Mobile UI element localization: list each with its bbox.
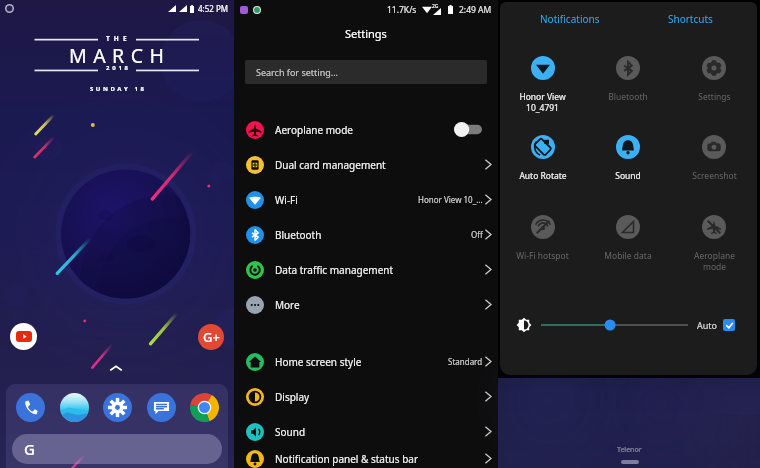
staticText: 2:49 AM [459, 4, 492, 16]
button[interactable]: Search for setting... [245, 60, 487, 84]
staticText: More [275, 298, 300, 312]
staticText: Sound [615, 170, 641, 182]
staticText: Wi-Fi hotspot [516, 250, 569, 262]
button[interactable]: Wi-Fi [234, 182, 498, 217]
staticText: Search for setting... [256, 66, 338, 78]
staticText: 2G [432, 3, 439, 10]
staticText: Home screen style [275, 355, 362, 369]
staticText: Bluetooth [608, 91, 648, 103]
staticText: Honor View 10_... [418, 194, 483, 205]
staticText: Mobile data [604, 250, 652, 262]
button[interactable]: Mobile data [585, 215, 671, 262]
staticText: G [24, 439, 35, 459]
staticText: Notifications [540, 12, 600, 26]
staticText: M A R C H [69, 42, 165, 69]
button[interactable]: More [234, 287, 498, 322]
button[interactable]: Google Plus [198, 324, 224, 350]
staticText: Off [471, 229, 483, 240]
button[interactable]: Gallery [56, 389, 92, 425]
staticText: Auto [697, 319, 718, 331]
button[interactable]: Settings [671, 56, 757, 103]
staticText: Bluetooth [275, 228, 322, 242]
staticText: Sound [275, 425, 306, 439]
button[interactable]: Aeroplane mode [671, 215, 757, 272]
staticText: 11.7K/s [387, 4, 417, 16]
button[interactable]: Home screen style [234, 344, 498, 379]
button[interactable]: Auto Rotate [500, 135, 585, 182]
button[interactable]: Shortcuts [630, 9, 751, 29]
button[interactable]: Google Search [12, 434, 222, 464]
staticText: Honor View 10_4791 [519, 91, 566, 113]
staticText: Display [275, 390, 310, 404]
staticText: G+ [203, 328, 220, 346]
staticText: Screenshot [692, 170, 737, 182]
button[interactable]: Aeroplane mode [234, 112, 498, 147]
staticText: T H E [106, 34, 128, 43]
staticText: Telenor [617, 445, 642, 455]
button[interactable]: Wi-Fi hotspot [500, 215, 585, 262]
staticText: Aeroplane mode [694, 250, 735, 272]
button[interactable]: Notification panel & status bar [234, 449, 498, 468]
staticText: S U N D A Y 1 8 [90, 85, 145, 93]
button[interactable]: Sound [234, 414, 498, 449]
staticText: Settings [345, 26, 387, 41]
button[interactable]: Notifications [510, 9, 630, 29]
button[interactable]: Chrome [186, 389, 222, 425]
button[interactable]: Aeroplane mode toggle [454, 121, 492, 138]
button[interactable]: Auto brightness [723, 319, 735, 331]
button[interactable]: Settings [99, 389, 135, 425]
button[interactable]: Phone [12, 389, 48, 425]
button[interactable]: Sound [585, 135, 671, 182]
button[interactable]: Display [234, 379, 498, 414]
button[interactable]: Dual card management [234, 147, 498, 182]
staticText: Shortcuts [668, 12, 713, 26]
staticText: Aeroplane mode [275, 123, 353, 137]
staticText: Settings [698, 91, 731, 103]
staticText: 4:52 PM [198, 3, 229, 14]
staticText: Dual card management [275, 158, 386, 172]
button[interactable]: Messages [143, 389, 179, 425]
staticText: Auto Rotate [519, 170, 567, 182]
staticText: Standard [448, 356, 483, 367]
button[interactable]: Honor View 10_4791 [500, 56, 585, 113]
button[interactable]: Bluetooth [585, 56, 671, 103]
button[interactable]: Bluetooth [234, 217, 498, 252]
staticText: Notification panel & status bar [275, 452, 419, 466]
staticText: Data traffic management [275, 263, 394, 277]
button[interactable]: YouTube [10, 323, 37, 350]
button[interactable]: Data traffic management [234, 252, 498, 287]
staticText: 2 0 1 8 [106, 64, 129, 72]
staticText: Wi-Fi [275, 193, 298, 207]
button[interactable]: Screenshot [671, 135, 757, 182]
other: Brightness [516, 317, 532, 333]
